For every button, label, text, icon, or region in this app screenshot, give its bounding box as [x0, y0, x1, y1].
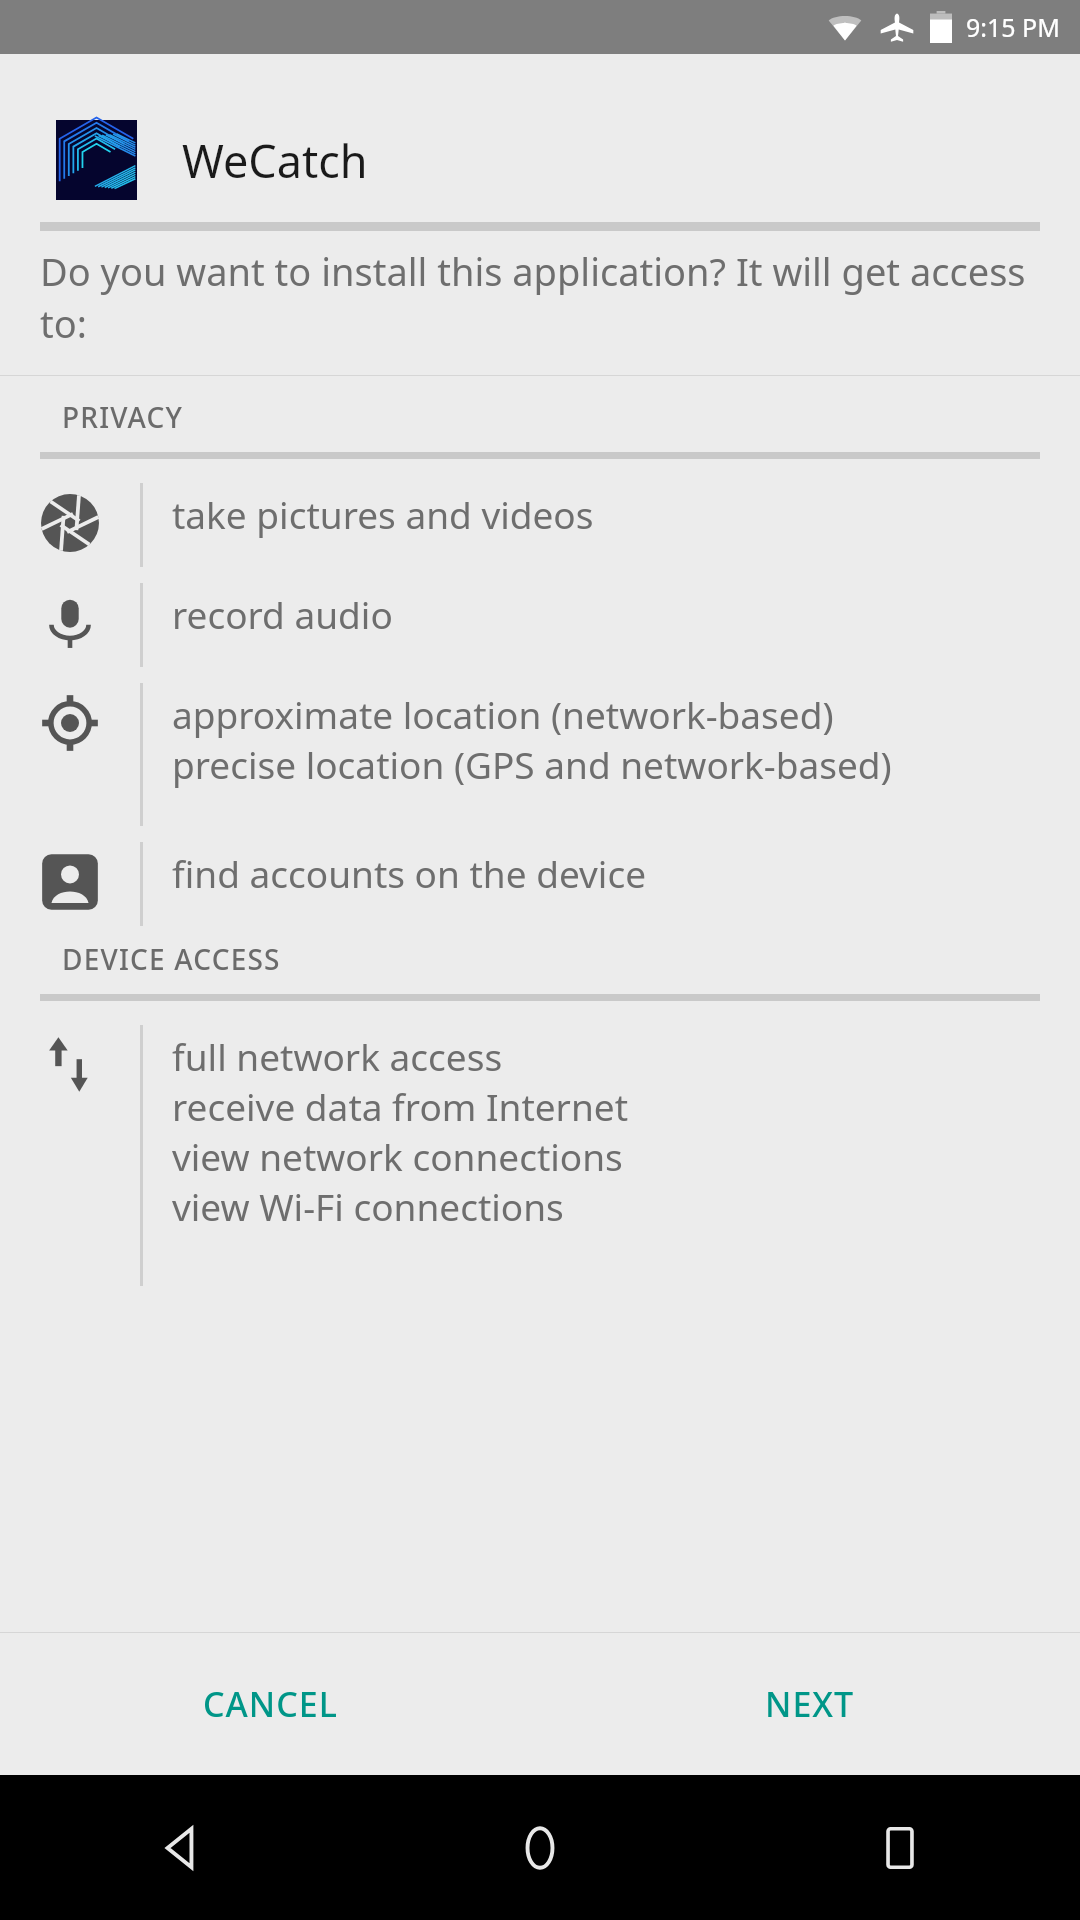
staticText: Do you want to install this application?… [40, 245, 1050, 349]
staticText: CANCEL [203, 1681, 338, 1727]
staticText: full network access [172, 1031, 503, 1081]
staticText: 9:15 PM [966, 10, 1060, 44]
staticText: view network connections [172, 1131, 623, 1181]
button[interactable]: Back [0, 1775, 360, 1920]
staticText: record audio [172, 589, 393, 639]
button[interactable]: CANCEL [0, 1633, 540, 1775]
staticText: NEXT [765, 1681, 855, 1727]
staticText: PRIVACY [62, 398, 184, 436]
button[interactable]: Home [360, 1775, 720, 1920]
button[interactable]: Recent apps [720, 1775, 1080, 1920]
staticText: view Wi-Fi connections [172, 1181, 564, 1231]
staticText: receive data from Internet [172, 1081, 628, 1131]
staticText: find accounts on the device [172, 848, 647, 898]
staticText: approximate location (network-based) [172, 689, 834, 739]
button[interactable]: NEXT [540, 1633, 1080, 1775]
staticText: precise location (GPS and network-based) [172, 739, 892, 789]
staticText: WeCatch [182, 130, 368, 191]
staticText: DEVICE ACCESS [62, 940, 281, 978]
staticText: take pictures and videos [172, 489, 594, 539]
